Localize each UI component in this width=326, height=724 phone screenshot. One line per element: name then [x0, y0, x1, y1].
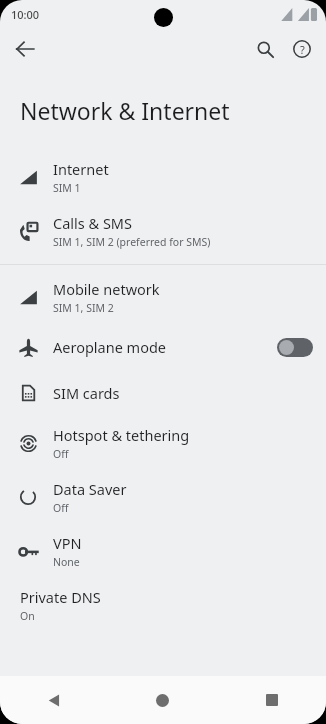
button[interactable]: SIM cards: [0, 370, 326, 416]
staticText: Calls & SMS: [53, 213, 132, 233]
staticText: Network & Internet: [20, 95, 230, 126]
button[interactable]: Mobile network: [0, 270, 326, 324]
staticText: Mobile network: [53, 279, 160, 299]
button[interactable]: Back: [0, 676, 108, 724]
button[interactable]: Search: [247, 31, 283, 67]
staticText: Private DNS: [20, 587, 101, 607]
button[interactable]: Aeroplane mode: [277, 338, 313, 357]
button[interactable]: Back: [7, 31, 43, 67]
staticText: Off: [53, 501, 69, 515]
button[interactable]: Aeroplane mode: [0, 324, 326, 370]
button[interactable]: Internet: [0, 150, 326, 204]
staticText: SIM 1, SIM 2 (preferred for SMS): [53, 235, 211, 249]
staticText: None: [53, 555, 80, 569]
staticText: Aeroplane mode: [53, 337, 167, 357]
staticText: Off: [53, 447, 69, 461]
button[interactable]: Hotspot & tethering: [0, 416, 326, 470]
staticText: Internet: [53, 159, 109, 179]
staticText: VPN: [53, 533, 82, 553]
staticText: SIM 1: [53, 181, 81, 195]
staticText: ?: [300, 42, 305, 57]
button[interactable]: Help: [284, 31, 320, 67]
button[interactable]: Private DNS: [0, 578, 326, 632]
button[interactable]: Home: [108, 676, 217, 724]
button[interactable]: Calls & SMS: [0, 204, 326, 258]
button[interactable]: Recent apps: [217, 676, 326, 724]
staticText: Hotspot & tethering: [53, 425, 190, 445]
button[interactable]: VPN: [0, 524, 326, 578]
staticText: 10:00: [11, 7, 40, 22]
staticText: Data Saver: [53, 479, 127, 499]
button[interactable]: Data Saver: [0, 470, 326, 524]
staticText: SIM 1, SIM 2: [53, 301, 114, 315]
staticText: SIM cards: [53, 383, 120, 403]
staticText: On: [20, 609, 35, 623]
